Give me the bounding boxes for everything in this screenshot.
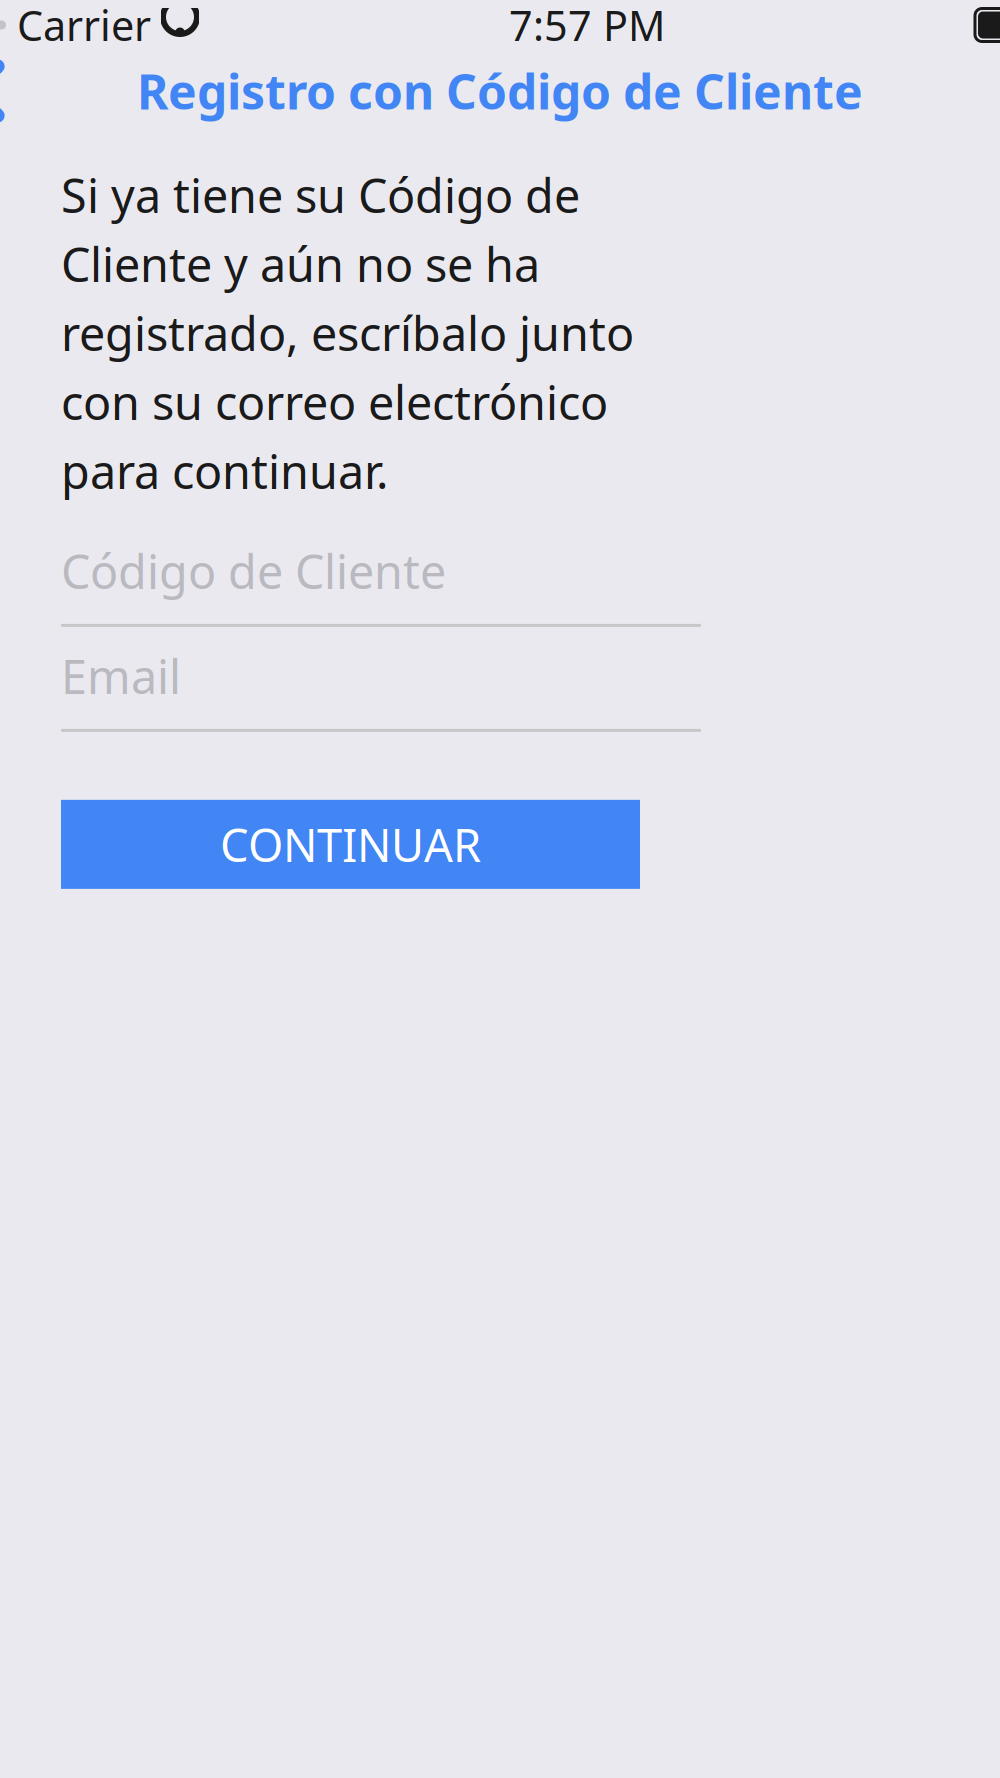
staticText: 7:57 PM	[509, 0, 665, 52]
staticText: Si ya tiene su Código de Cliente y aún n…	[61, 164, 634, 502]
button[interactable]: Back	[0, 50, 35, 132]
staticText: Registro con Código de Cliente	[137, 59, 863, 123]
staticText: Código de Cliente	[61, 540, 446, 602]
staticText: Carrier	[17, 0, 151, 52]
staticText: Email	[61, 645, 181, 707]
staticText: CONTINUAR	[220, 814, 481, 874]
button[interactable]: CONTINUAR	[61, 800, 640, 889]
